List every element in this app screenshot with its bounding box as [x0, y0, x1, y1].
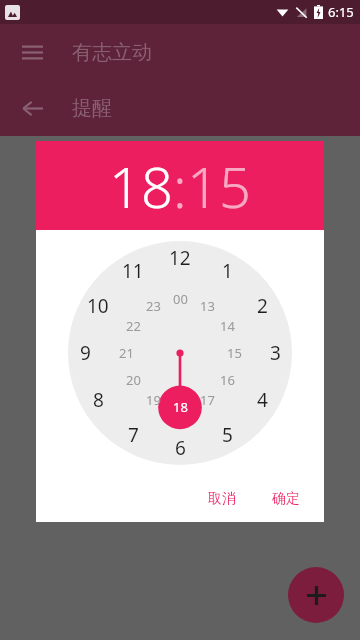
staticText: 8	[93, 387, 104, 413]
staticText: 5	[222, 422, 233, 448]
button[interactable]: 取消	[198, 484, 246, 514]
staticText: 15	[187, 148, 251, 224]
staticText: 15	[227, 344, 242, 362]
staticText: 16	[220, 371, 235, 389]
staticText: 23	[146, 297, 161, 315]
staticText: 6	[175, 435, 186, 461]
staticText: :	[173, 148, 187, 224]
staticText: 21	[119, 344, 134, 362]
staticText: 取消	[208, 490, 236, 508]
staticText: 11	[122, 258, 144, 284]
staticText: 2	[257, 293, 268, 319]
staticText: 17	[200, 391, 215, 409]
staticText: 19	[146, 391, 161, 409]
button[interactable]: Back	[10, 86, 54, 130]
staticText: 20	[126, 371, 141, 389]
staticText: 确定	[272, 490, 300, 508]
staticText: 4	[257, 387, 268, 413]
button[interactable]: 15	[187, 148, 251, 224]
button[interactable]: Add reminder	[288, 567, 344, 623]
staticText: 18	[173, 398, 188, 416]
staticText: 18	[109, 148, 173, 224]
staticText: 13	[200, 297, 215, 315]
staticText: 10	[87, 293, 109, 319]
staticText: 3	[270, 340, 281, 366]
staticText: 6:15	[328, 3, 354, 21]
staticText: 有志立动	[72, 40, 152, 65]
button[interactable]: 18	[109, 148, 173, 224]
staticText: 提醒	[72, 96, 112, 121]
staticText: 7	[128, 422, 139, 448]
staticText: 9	[80, 340, 91, 366]
staticText: 00	[173, 290, 188, 308]
button[interactable]: 确定	[262, 484, 310, 514]
staticText: 22	[126, 317, 141, 335]
button[interactable]: Menu	[10, 30, 54, 74]
staticText: 12	[169, 245, 191, 271]
staticText: 14	[220, 317, 235, 335]
staticText: 1	[222, 258, 233, 284]
